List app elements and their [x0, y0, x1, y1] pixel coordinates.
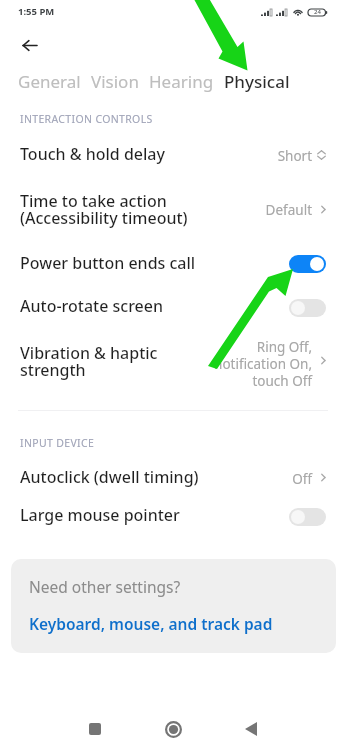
button[interactable]: Vision [91, 70, 139, 92]
staticText: Vision [91, 70, 139, 92]
staticText: Autoclick (dwell timing) [20, 466, 199, 488]
staticText: Hearing [149, 70, 214, 92]
staticText: Short [277, 147, 312, 165]
button[interactable]: Physical [224, 70, 290, 92]
staticText: 1:55 PM [18, 5, 55, 18]
button[interactable]: Large mouse pointer [0, 495, 346, 537]
button[interactable]: Hearing [149, 70, 214, 92]
button[interactable]: Auto-rotate screen [0, 286, 346, 328]
button[interactable]: Need other settings? [11, 559, 336, 653]
button[interactable]: Back [234, 712, 268, 746]
staticText: Touch & hold delay [20, 143, 165, 165]
button[interactable]: General [18, 70, 81, 92]
staticText: INPUT DEVICE [20, 436, 95, 450]
button[interactable]: Home [156, 712, 190, 746]
button[interactable]: Vibration & haptic strength [0, 332, 346, 390]
staticText: Ring Off, notification On, touch Off [214, 338, 312, 390]
button[interactable]: Switch off [289, 508, 326, 526]
staticText: INTERACTION CONTROLS [20, 112, 153, 126]
button[interactable]: Time to take action (Accessibility timeo… [0, 181, 346, 239]
staticText: Physical [224, 70, 290, 92]
staticText: Need other settings? [29, 576, 181, 597]
button[interactable]: Navigate up [12, 28, 46, 62]
staticText: General [18, 70, 81, 92]
staticText: 24 [314, 8, 321, 16]
staticText: Time to take action (Accessibility timeo… [20, 190, 188, 228]
button[interactable]: Switch off [289, 299, 326, 317]
staticText: Default [265, 201, 312, 219]
staticText: Power button ends call [20, 252, 196, 274]
button[interactable]: Power button ends call [0, 243, 346, 285]
staticText: Keyboard, mouse, and track pad [29, 613, 273, 634]
staticText: Auto-rotate screen [20, 295, 164, 317]
button[interactable]: Touch & hold delay [0, 133, 346, 173]
staticText: Large mouse pointer [20, 504, 180, 526]
button[interactable]: Autoclick (dwell timing) [0, 457, 346, 499]
button[interactable]: Recent apps [78, 712, 112, 746]
staticText: Off [292, 470, 312, 488]
staticText: Vibration & haptic strength [20, 342, 158, 380]
button[interactable]: Switch on [289, 255, 326, 273]
